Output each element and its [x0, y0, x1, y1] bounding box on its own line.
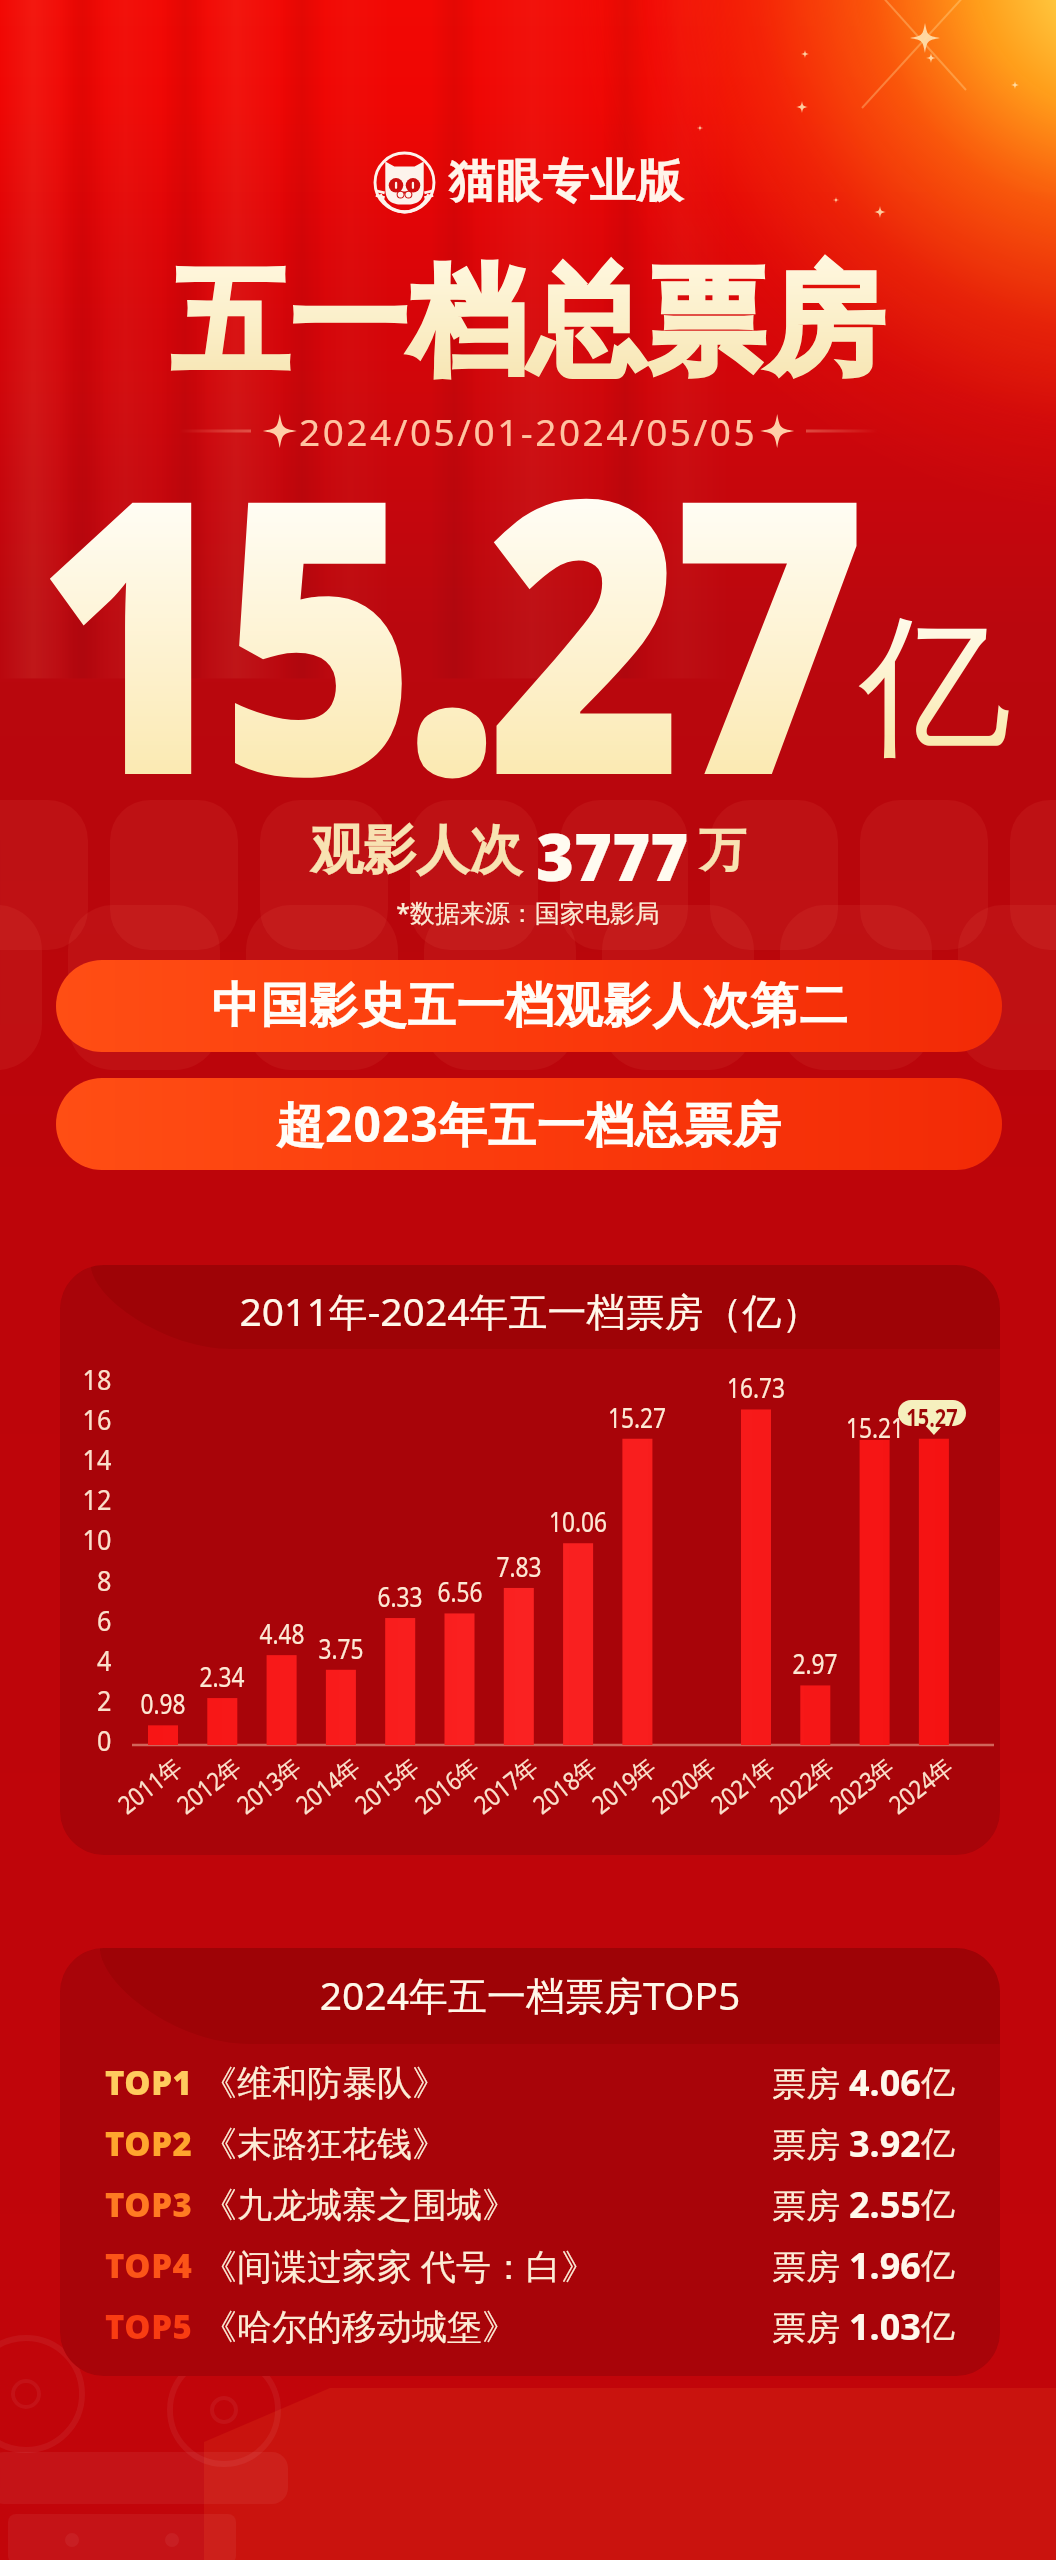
staticText: *数据来源：国家电影局: [0, 895, 1056, 929]
staticText: 亿: [921, 2061, 955, 2104]
staticText: 2024年: [881, 1749, 960, 1821]
staticText: 12: [65, 1480, 111, 1518]
staticText: 16: [65, 1400, 111, 1438]
staticText: 2015年: [347, 1749, 426, 1821]
staticText: 15.27: [36, 368, 854, 886]
staticText: 1.96: [849, 2241, 921, 2290]
button[interactable]: TOP3: [105, 2174, 955, 2235]
staticText: 2011年-2024年五一档票房（亿）: [60, 1284, 1000, 1337]
staticText: TOP3: [105, 2182, 193, 2227]
staticText: 2018年: [525, 1749, 604, 1821]
staticText: 8: [65, 1561, 111, 1599]
staticText: 2024/05/01-2024/05/05: [299, 406, 758, 456]
staticText: 亿: [859, 592, 1011, 783]
staticText: 票房: [772, 2060, 849, 2106]
staticText: 五一档总票房: [0, 249, 1056, 396]
staticText: 2.34: [184, 1658, 260, 1695]
staticText: 4.48: [244, 1615, 320, 1652]
staticText: 0.98: [125, 1685, 201, 1722]
staticText: 2014年: [288, 1749, 367, 1821]
staticText: 观影人次: [310, 817, 522, 884]
staticText: 2.97: [777, 1645, 853, 1682]
staticText: 3.92: [849, 2119, 921, 2168]
button[interactable]: 中国影史五一档观影人次第二: [56, 960, 1002, 1052]
staticText: 6: [65, 1601, 111, 1639]
staticText: 15.27: [896, 1400, 968, 1434]
staticText: 14: [65, 1440, 111, 1478]
staticText: 10.06: [540, 1503, 616, 1540]
button[interactable]: 猫眼专业版: [0, 147, 1056, 217]
staticText: 2017年: [466, 1749, 545, 1821]
staticText: 票房: [772, 2182, 849, 2228]
staticText: 中国影史五一档观影人次第二: [211, 976, 848, 1036]
staticText: 3.75: [303, 1630, 379, 1667]
staticText: 6.33: [362, 1578, 438, 1615]
staticText: 《九龙城寨之围城》: [202, 2183, 517, 2227]
staticText: 2013年: [229, 1749, 308, 1821]
staticText: 2012年: [169, 1749, 248, 1821]
staticText: 2011年: [110, 1749, 189, 1821]
staticText: 18: [65, 1360, 111, 1398]
staticText: TOP1: [105, 2060, 193, 2105]
staticText: 2016年: [407, 1749, 486, 1821]
staticText: 2021年: [703, 1749, 782, 1821]
staticText: 4: [65, 1641, 111, 1679]
staticText: 2024年五一档票房TOP5: [60, 1968, 1000, 2021]
button[interactable]: 2011年-2024年五一档票房（亿）: [60, 1265, 1000, 1855]
staticText: 2023年: [822, 1749, 901, 1821]
staticText: 《维和防暴队》: [202, 2061, 447, 2105]
staticText: 《末路狂花钱》: [202, 2122, 447, 2166]
staticText: 猫眼专业版: [448, 153, 683, 211]
staticText: 亿: [921, 2244, 955, 2287]
staticText: 亿: [921, 2183, 955, 2226]
staticText: 1.03: [849, 2302, 921, 2351]
staticText: 2: [65, 1681, 111, 1719]
staticText: 票房: [772, 2243, 849, 2289]
staticText: 亿: [921, 2122, 955, 2165]
staticText: TOP5: [105, 2304, 193, 2349]
staticText: 16.73: [718, 1369, 794, 1406]
staticText: 超2023年五一档总票房: [276, 1091, 782, 1157]
staticText: TOP4: [105, 2243, 193, 2288]
staticText: 票房: [772, 2304, 849, 2350]
staticText: 2022年: [762, 1749, 841, 1821]
staticText: 15.21: [837, 1409, 913, 1446]
staticText: 4.06: [849, 2058, 921, 2107]
button[interactable]: TOP4: [105, 2235, 955, 2296]
staticText: 《间谍过家家 代号：白》: [202, 2242, 597, 2290]
staticText: 0: [65, 1721, 111, 1759]
staticText: 10: [65, 1520, 111, 1558]
staticText: 《哈尔的移动城堡》: [202, 2305, 517, 2349]
staticText: 2.55: [849, 2180, 921, 2229]
button[interactable]: TOP1: [105, 2052, 955, 2113]
staticText: 3777: [536, 812, 689, 888]
staticText: 7.83: [481, 1548, 557, 1585]
staticText: 6.56: [422, 1573, 498, 1610]
staticText: TOP2: [105, 2121, 193, 2166]
staticText: 万: [699, 821, 746, 880]
staticText: 15.27: [599, 1399, 675, 1436]
staticText: 票房: [772, 2121, 849, 2167]
staticText: 亿: [921, 2305, 955, 2348]
button[interactable]: 超2023年五一档总票房: [56, 1078, 1002, 1170]
staticText: 2020年: [644, 1749, 723, 1821]
button[interactable]: TOP2: [105, 2113, 955, 2174]
staticText: 2019年: [584, 1749, 663, 1821]
button[interactable]: TOP5: [105, 2296, 955, 2357]
